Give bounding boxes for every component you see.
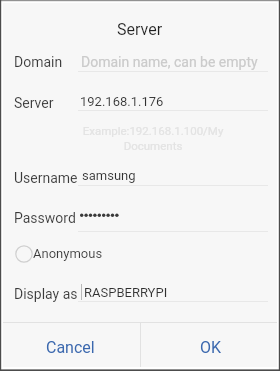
button[interactable]: Cancel [0,323,140,371]
staticText: Username [14,170,78,186]
staticText: Server [117,20,163,39]
button[interactable]: OK [141,323,280,371]
staticText: samsung [82,168,136,183]
staticText: Anonymous [33,246,103,261]
button[interactable]: Anonymous [0,241,103,267]
staticText: OK [200,338,222,357]
staticText: Server [14,95,54,111]
staticText: 192.168.1.176 [80,94,164,109]
staticText: RASPBERRYPI [84,285,168,300]
staticText: Domain name, can be empty [81,54,258,70]
staticText: Cancel [46,338,95,357]
staticText: Password [14,210,76,226]
staticText: Display as [14,286,78,302]
staticText: Domain [14,54,63,70]
staticText: Example:192.168.1.100/My Documents [58,124,248,153]
